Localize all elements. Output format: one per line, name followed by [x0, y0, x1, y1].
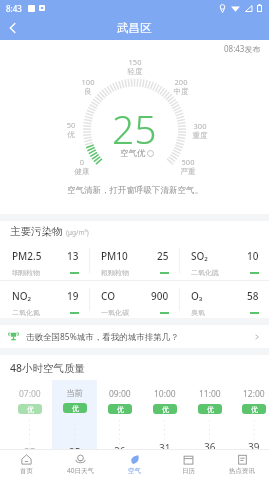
staticText: 优: [251, 405, 258, 414]
staticText: 25: [24, 445, 36, 459]
staticText: 10:00: [154, 388, 176, 400]
staticText: 中度: [169, 87, 193, 96]
staticText: O₃: [191, 289, 203, 303]
staticText: 48小时空气质量: [10, 361, 86, 375]
staticText: 严重: [176, 167, 200, 176]
staticText: 健康: [70, 167, 94, 176]
staticText: SO₂: [191, 249, 208, 263]
button[interactable]: 11:00: [187, 380, 232, 449]
button[interactable]: 击败全国85%城市，看我的城市排第几？: [0, 325, 269, 348]
staticText: 26: [114, 444, 126, 458]
staticText: 细颗粒物: [12, 268, 40, 277]
button[interactable]: 空气: [107, 450, 161, 478]
staticText: 轻度: [123, 67, 147, 76]
staticText: 25: [69, 445, 81, 459]
staticText: 09:00: [109, 388, 131, 400]
staticText: 11:00: [199, 388, 221, 400]
staticText: 36: [204, 440, 216, 454]
staticText: 200: [169, 77, 193, 87]
staticText: NO₂: [12, 289, 32, 303]
staticText: 08:43发布: [224, 43, 261, 54]
staticText: 热点资讯: [229, 467, 255, 475]
staticText: 优: [117, 405, 124, 414]
staticText: 40日天气: [67, 466, 94, 475]
staticText: 日历: [182, 467, 195, 475]
staticText: 二氧化硫: [191, 268, 219, 277]
button[interactable]: 首页: [0, 450, 53, 478]
staticText: 优: [27, 405, 34, 414]
staticText: 100: [76, 77, 100, 87]
staticText: 良: [76, 87, 100, 96]
button[interactable]: 07:00: [7, 380, 52, 449]
staticText: 击败全国85%城市，看我的城市排第几？: [26, 331, 179, 343]
staticText: 粗颗粒物: [101, 268, 129, 277]
staticText: 58: [247, 289, 259, 303]
staticText: 50: [59, 120, 83, 130]
button[interactable]: 当前: [52, 380, 97, 449]
staticText: 空气: [128, 467, 141, 475]
staticText: 重度: [188, 131, 212, 140]
staticText: 07:00: [19, 388, 41, 400]
button[interactable]: 日历: [161, 450, 215, 478]
staticText: 25: [112, 102, 157, 155]
staticText: 12:00: [243, 388, 265, 400]
staticText: 优: [59, 130, 83, 139]
staticText: PM2.5: [12, 249, 42, 263]
staticText: 900: [151, 289, 169, 303]
staticText: 当前: [66, 388, 83, 399]
staticText: (μg/m³): [66, 228, 89, 237]
staticText: 武昌区: [117, 21, 152, 35]
staticText: CO: [101, 289, 115, 303]
staticText: 主要污染物: [10, 225, 63, 238]
staticText: 一氧化碳: [101, 308, 129, 317]
staticText: 13: [67, 249, 79, 263]
staticText: 8:43: [6, 3, 22, 14]
staticText: 空气清新，打开窗呼吸下清新空气。: [67, 185, 203, 196]
staticText: 150: [123, 57, 147, 67]
staticText: 19: [67, 289, 79, 303]
staticText: PM10: [101, 249, 128, 263]
staticText: 首页: [20, 467, 33, 475]
staticText: 25: [157, 249, 169, 263]
button[interactable]: 09:00: [97, 380, 142, 449]
button[interactable]: 10:00: [142, 380, 187, 449]
button[interactable]: 40日天气: [53, 450, 107, 478]
button[interactable]: 热点资讯: [215, 450, 269, 478]
staticText: 空气优: [120, 148, 146, 159]
staticText: 10: [247, 249, 259, 263]
staticText: 优: [162, 405, 169, 414]
staticText: 31: [159, 441, 171, 455]
button[interactable]: 12:00: [232, 380, 269, 449]
staticText: 0: [70, 157, 94, 167]
staticText: 二氧化氮: [12, 308, 40, 317]
staticText: 500: [176, 157, 200, 167]
staticText: 优: [207, 405, 214, 414]
staticText: 300: [188, 121, 212, 131]
staticText: 39: [248, 440, 260, 454]
staticText: 臭氧: [191, 308, 205, 317]
button[interactable]: Back: [0, 16, 24, 40]
staticText: 优: [72, 404, 79, 413]
